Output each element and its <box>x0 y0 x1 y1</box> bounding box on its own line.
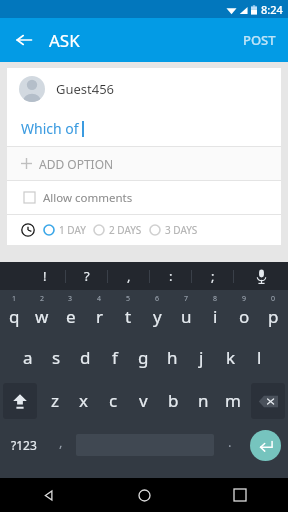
button[interactable]: 0 <box>259 290 288 336</box>
button[interactable]: Voice input <box>234 262 288 290</box>
button[interactable]: v <box>128 379 158 422</box>
staticText: p <box>268 305 279 328</box>
button[interactable]: 7 <box>172 290 201 336</box>
button[interactable]: , <box>48 422 73 468</box>
button[interactable]: Allow comments <box>7 181 281 214</box>
button[interactable]: g <box>129 336 158 379</box>
button[interactable]: 1 DAY <box>43 223 86 237</box>
staticText: e <box>66 305 76 328</box>
staticText: s <box>52 346 61 369</box>
staticText: 1 DAY <box>59 223 86 237</box>
staticText: 8:24 <box>261 2 283 17</box>
staticText: POST <box>243 31 276 49</box>
staticText: f <box>112 346 118 369</box>
button[interactable]: 8 <box>201 290 230 336</box>
button[interactable]: 6 <box>143 290 172 336</box>
staticText: c <box>109 389 118 412</box>
staticText: 0 <box>271 294 276 304</box>
staticText: q <box>9 305 20 328</box>
button[interactable]: 1 <box>0 290 28 336</box>
staticText: ASK <box>49 29 80 52</box>
button[interactable]: ! <box>24 262 66 290</box>
button[interactable]: ?123 <box>0 422 48 468</box>
button[interactable]: Home <box>96 478 192 512</box>
staticText: 8 <box>213 294 218 304</box>
staticText: l <box>257 346 262 369</box>
staticText: Which of <box>21 119 79 138</box>
button[interactable]: POST <box>231 20 288 60</box>
button[interactable]: Shift <box>3 383 37 419</box>
staticText: ? <box>84 267 90 285</box>
staticText: h <box>167 346 178 369</box>
button[interactable]: Back <box>8 24 40 56</box>
button[interactable]: 2 <box>28 290 56 336</box>
button[interactable]: a <box>14 336 42 379</box>
staticText: 3 <box>68 294 73 304</box>
staticText: o <box>239 305 250 328</box>
staticText: 5 <box>126 294 131 304</box>
button[interactable]: j <box>187 336 216 379</box>
button[interactable]: b <box>158 379 188 422</box>
staticText: x <box>79 389 88 412</box>
staticText: Allow comments <box>43 190 133 206</box>
staticText: n <box>198 389 209 412</box>
button[interactable]: : <box>150 262 192 290</box>
button[interactable]: k <box>216 336 245 379</box>
button[interactable]: Backspace <box>251 383 285 419</box>
button[interactable]: Recents <box>192 478 288 512</box>
button[interactable]: . <box>217 422 242 468</box>
button[interactable]: 5 <box>114 290 143 336</box>
button[interactable]: 3 <box>56 290 85 336</box>
staticText: : <box>169 267 173 285</box>
button[interactable]: l <box>245 336 274 379</box>
staticText: 1 <box>12 294 17 304</box>
button[interactable]: s <box>42 336 71 379</box>
button[interactable]: 9 <box>230 290 259 336</box>
staticText: m <box>225 389 241 412</box>
button[interactable]: h <box>158 336 187 379</box>
staticText: w <box>35 305 49 328</box>
staticText: , <box>59 433 63 451</box>
button[interactable]: n <box>188 379 218 422</box>
button[interactable]: x <box>69 379 98 422</box>
staticText: . <box>228 433 232 451</box>
button[interactable]: 3 DAYS <box>149 223 198 237</box>
staticText: ; <box>211 267 215 285</box>
button[interactable]: z <box>40 379 69 422</box>
staticText: i <box>213 305 218 328</box>
staticText: b <box>168 389 179 412</box>
button[interactable]: ; <box>192 262 234 290</box>
staticText: Guest456 <box>56 80 115 98</box>
button[interactable]: d <box>71 336 100 379</box>
staticText: , <box>127 267 131 285</box>
staticText: g <box>138 346 149 369</box>
staticText: y <box>153 305 162 328</box>
staticText: ! <box>43 267 47 285</box>
staticText: j <box>199 346 204 369</box>
staticText: 6 <box>155 294 160 304</box>
staticText: 9 <box>242 294 247 304</box>
button[interactable]: 4 <box>85 290 114 336</box>
staticText: 2 <box>40 294 45 304</box>
staticText: r <box>96 305 104 328</box>
button[interactable]: 2 DAYS <box>93 223 142 237</box>
button[interactable]: c <box>98 379 128 422</box>
button[interactable]: Which of <box>7 110 281 146</box>
staticText: t <box>125 305 132 328</box>
staticText: z <box>51 389 59 412</box>
staticText: a <box>23 346 33 369</box>
staticText: 4 <box>97 294 102 304</box>
staticText: v <box>139 389 148 412</box>
staticText: 2 DAYS <box>109 223 142 237</box>
staticText: ?123 <box>11 437 37 453</box>
staticText: 7 <box>184 294 189 304</box>
button[interactable]: m <box>218 379 248 422</box>
staticText: u <box>181 305 192 328</box>
button[interactable]: , <box>108 262 150 290</box>
button[interactable]: ? <box>66 262 108 290</box>
button[interactable]: Back <box>0 478 96 512</box>
button[interactable]: Enter <box>250 430 281 461</box>
button[interactable]: f <box>100 336 129 379</box>
button[interactable]: ADD OPTION <box>7 147 281 180</box>
